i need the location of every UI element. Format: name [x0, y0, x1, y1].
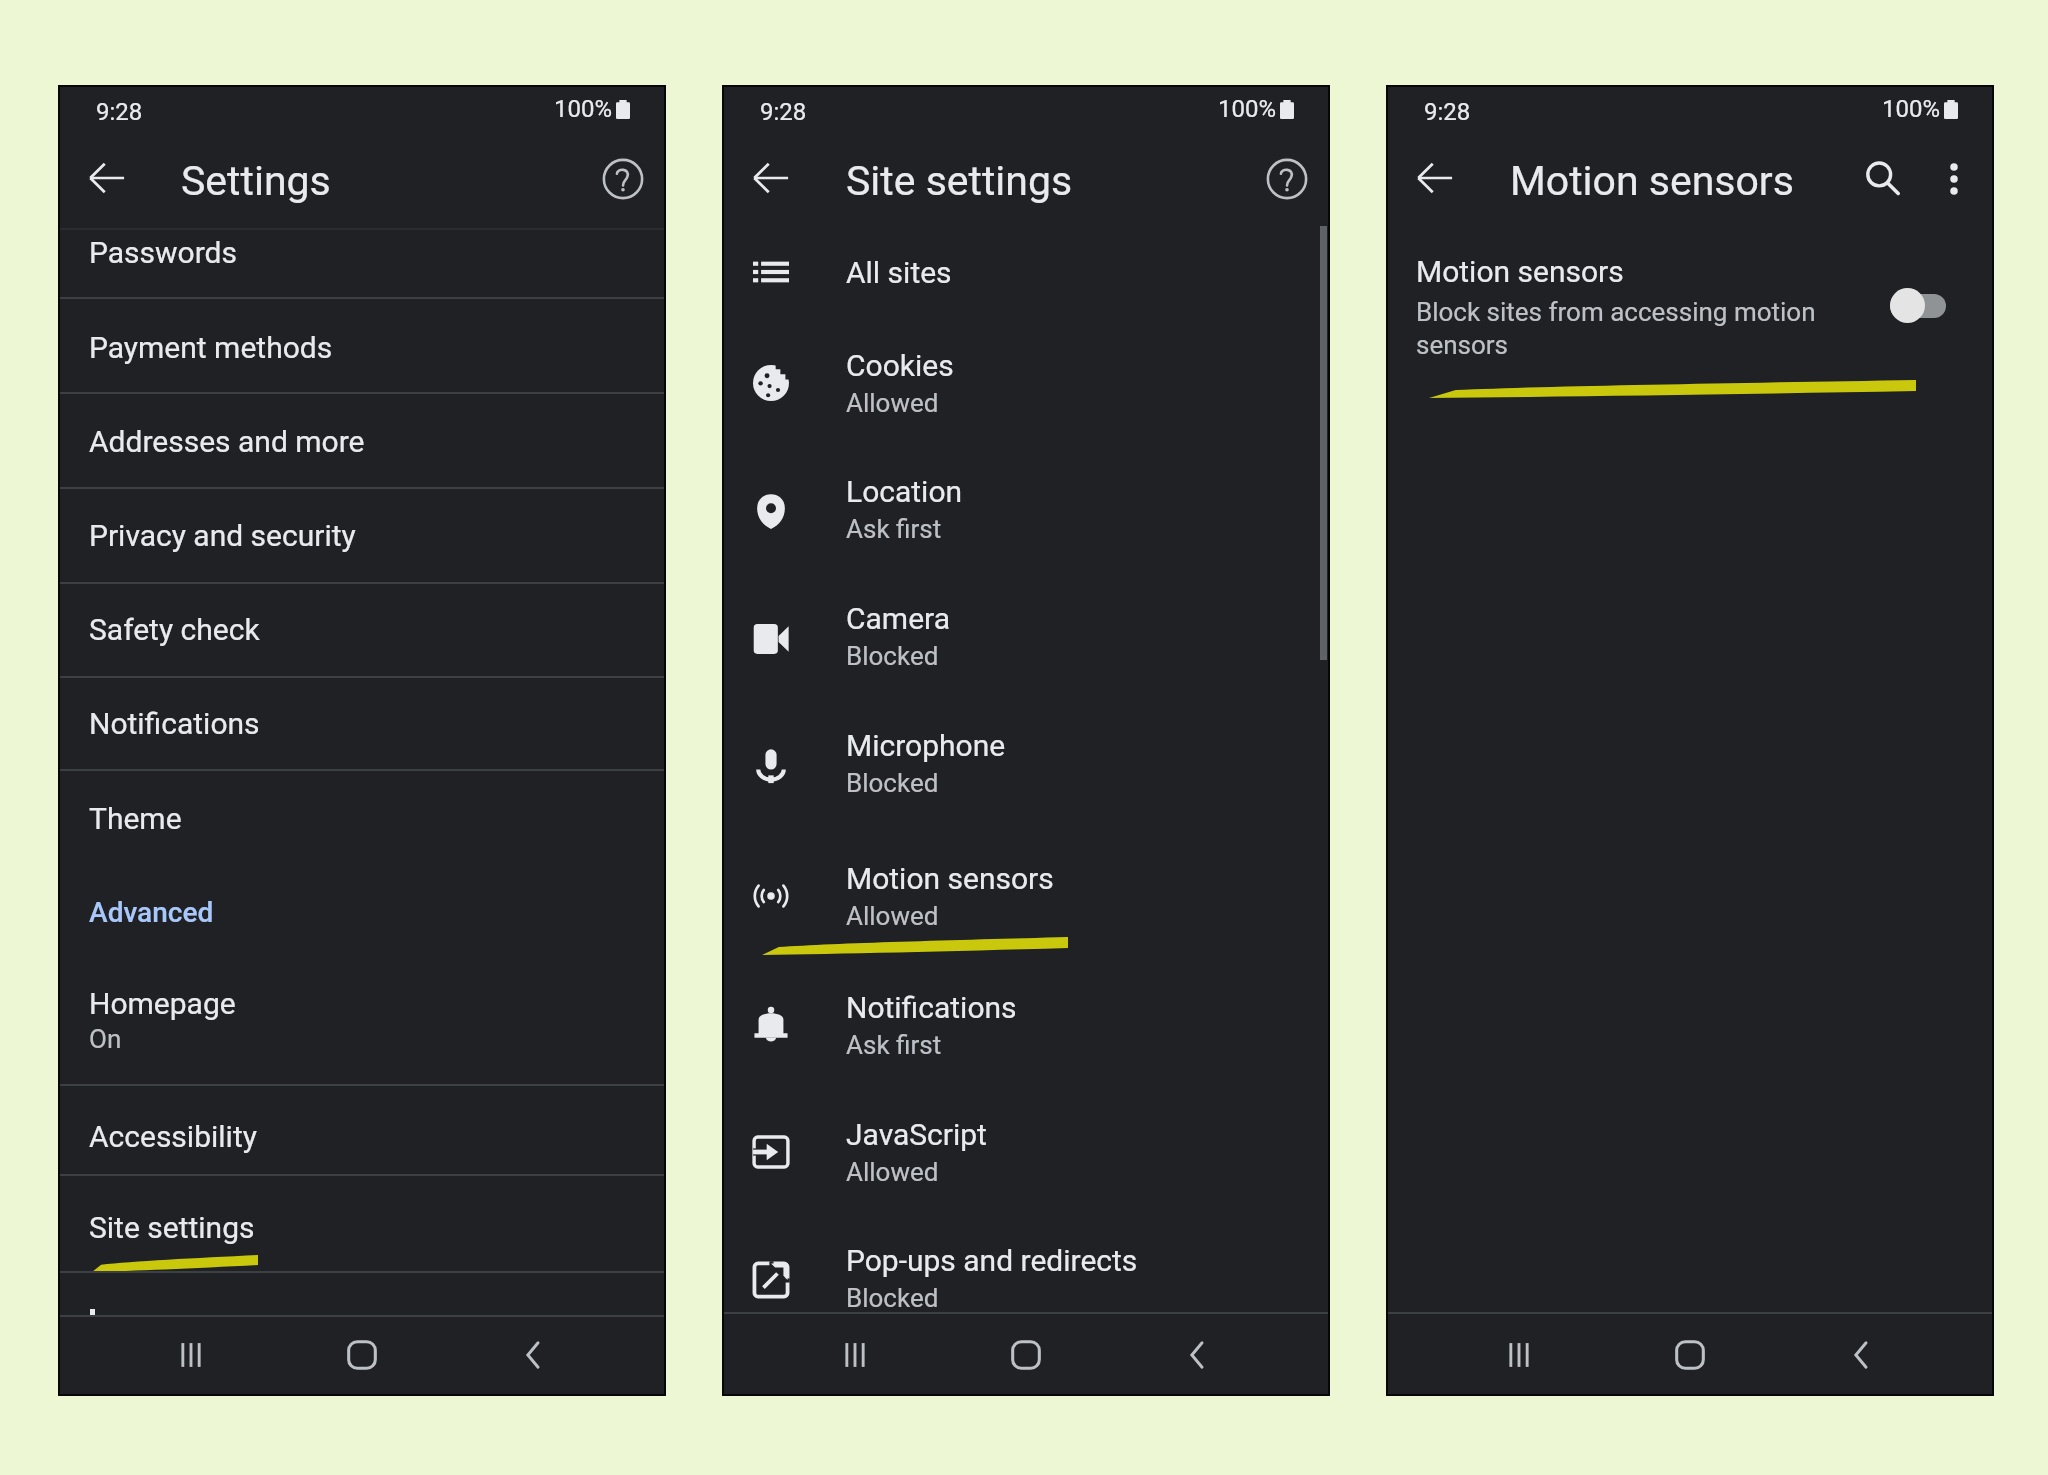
staticText: Accessibility [89, 1119, 257, 1154]
staticText: Blocked [846, 1283, 939, 1313]
staticText: Site settings [846, 157, 1073, 205]
button[interactable]: Cookies [724, 312, 1328, 439]
staticText: On [89, 1024, 122, 1054]
staticText: Pop-ups and redirects [846, 1243, 1138, 1278]
staticText: Homepage [89, 986, 236, 1021]
button[interactable]: Home [1649, 1315, 1731, 1394]
staticText: Motion sensors [1510, 157, 1794, 205]
button[interactable]: Motion sensors [1388, 237, 1992, 377]
staticText: Camera [846, 601, 950, 636]
button[interactable]: Site settings [60, 1175, 664, 1274]
button[interactable]: Addresses and more [60, 396, 664, 490]
staticText: 100% [1882, 95, 1941, 123]
staticText: Cookies [846, 348, 954, 383]
staticText: Allowed [846, 901, 939, 931]
staticText: Blocked [846, 641, 939, 671]
button[interactable]: Notifications [60, 678, 664, 772]
staticText: Allowed [846, 1157, 939, 1187]
staticText: sensors [1416, 330, 1509, 360]
button[interactable]: All sites [724, 219, 1328, 346]
button[interactable]: Location [724, 438, 1328, 565]
button[interactable]: Search [1853, 149, 1913, 209]
button[interactable]: Notifications [724, 954, 1328, 1081]
button[interactable]: Home [985, 1315, 1067, 1394]
staticText: Advanced [89, 896, 214, 929]
staticText: Notifications [846, 990, 1017, 1025]
staticText: Blocked [846, 768, 939, 798]
staticText: Block sites from accessing motion [1416, 297, 1816, 327]
button[interactable]: Passwords [60, 207, 664, 301]
staticText: All sites [846, 255, 952, 290]
button[interactable]: Safety check [60, 584, 664, 678]
button[interactable]: Camera [724, 565, 1328, 692]
button[interactable]: Theme [60, 773, 664, 867]
button[interactable]: More options [1924, 149, 1984, 209]
button[interactable]: Back [1405, 148, 1465, 208]
button[interactable]: Recent apps [1478, 1315, 1560, 1394]
staticText: Ask first [846, 514, 942, 544]
button[interactable]: Go back [1157, 1315, 1239, 1394]
button[interactable]: Help [1257, 149, 1317, 209]
staticText: 9:28 [96, 98, 143, 126]
button[interactable]: JavaScript [724, 1081, 1328, 1208]
button[interactable]: Privacy and security [60, 490, 664, 584]
staticText: 9:28 [1424, 98, 1471, 126]
button[interactable]: Payment methods [60, 302, 664, 396]
staticText: Site settings [89, 1210, 255, 1245]
button[interactable]: Recent apps [814, 1315, 896, 1394]
staticText: Payment methods [89, 330, 333, 365]
button[interactable]: Pop-ups and redirects [724, 1207, 1328, 1334]
staticText: Safety check [89, 612, 260, 647]
staticText: Location [846, 474, 963, 509]
staticText: Notifications [89, 706, 260, 741]
staticText: Privacy and security [89, 518, 356, 553]
button[interactable]: Microphone [724, 692, 1328, 819]
button[interactable]: Accessibility [60, 1091, 664, 1185]
staticText: Settings [181, 157, 331, 205]
button[interactable]: Back [741, 148, 801, 208]
staticText: Addresses and more [89, 424, 365, 459]
staticText: 100% [1218, 95, 1277, 123]
staticText: Theme [89, 801, 182, 836]
button[interactable]: Recent apps [150, 1315, 232, 1394]
staticText: Motion sensors [846, 861, 1054, 896]
staticText: 9:28 [760, 98, 807, 126]
button[interactable]: Help [593, 149, 653, 209]
button[interactable]: Go back [493, 1315, 575, 1394]
button[interactable]: Back [77, 148, 137, 208]
staticText: Passwords [89, 235, 237, 270]
button[interactable]: Go back [1821, 1315, 1903, 1394]
staticText: Allowed [846, 388, 939, 418]
button[interactable]: Motion sensors [724, 825, 1328, 952]
button[interactable]: Home [321, 1315, 403, 1394]
button[interactable]: Motion sensors toggle, off [1890, 288, 1946, 324]
staticText: 100% [554, 95, 613, 123]
button[interactable]: Homepage [60, 949, 664, 1084]
staticText: Ask first [846, 1030, 942, 1060]
staticText: JavaScript [846, 1117, 987, 1152]
staticText: Microphone [846, 728, 1006, 763]
staticText: Motion sensors [1416, 254, 1624, 289]
